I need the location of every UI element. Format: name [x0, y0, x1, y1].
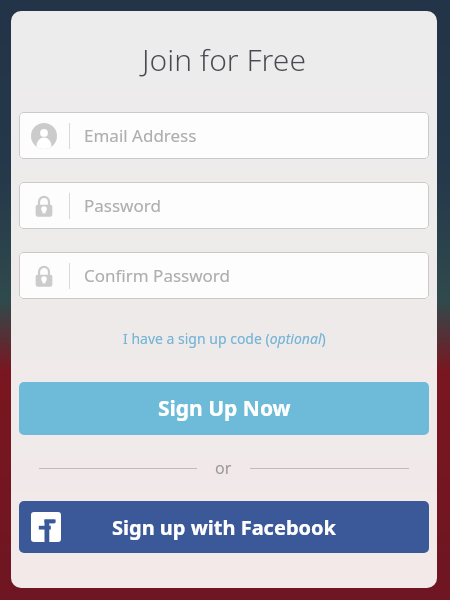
staticText: Join for Free — [142, 39, 306, 80]
staticText: Email Address — [84, 124, 197, 147]
staticText: Sign up with Facebook — [112, 514, 336, 541]
button[interactable]: Sign Up Now — [19, 382, 429, 435]
button[interactable]: Facebook — [19, 501, 429, 553]
staticText: I have a sign up code (optional) — [123, 329, 326, 348]
button[interactable]: Password — [19, 182, 429, 229]
staticText: Password — [84, 194, 161, 217]
other: Facebook — [31, 512, 61, 542]
button[interactable]: Email Address — [19, 112, 429, 159]
staticText: or — [215, 457, 232, 479]
button[interactable]: I have a sign up code (optional) — [11, 325, 437, 352]
staticText: Confirm Password — [84, 264, 230, 287]
button[interactable]: Confirm Password — [19, 252, 429, 299]
staticText: Sign Up Now — [158, 394, 291, 423]
